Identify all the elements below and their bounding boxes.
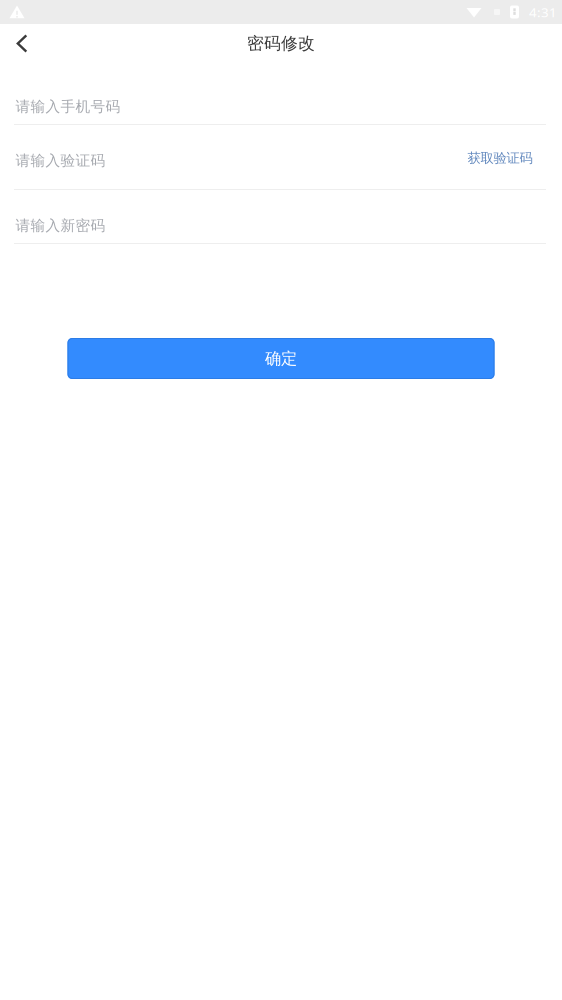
button[interactable]: 请输入验证码 bbox=[0, 125, 562, 190]
button[interactable]: 确定 bbox=[67, 338, 494, 379]
button[interactable]: 请输入手机号码 bbox=[0, 76, 562, 125]
staticText: 请输入验证码 bbox=[15, 151, 105, 170]
button[interactable]: Back bbox=[0, 21, 44, 65]
button[interactable]: 获取验证码 bbox=[460, 141, 540, 175]
button[interactable]: 请输入新密码 bbox=[0, 190, 562, 244]
staticText: 密码修改 bbox=[247, 33, 315, 54]
staticText: 获取验证码 bbox=[467, 150, 532, 166]
staticText: 确定 bbox=[265, 348, 297, 369]
staticText: 4:31 bbox=[529, 3, 557, 21]
staticText: 请输入手机号码 bbox=[15, 97, 120, 116]
staticText: 请输入新密码 bbox=[15, 216, 105, 235]
